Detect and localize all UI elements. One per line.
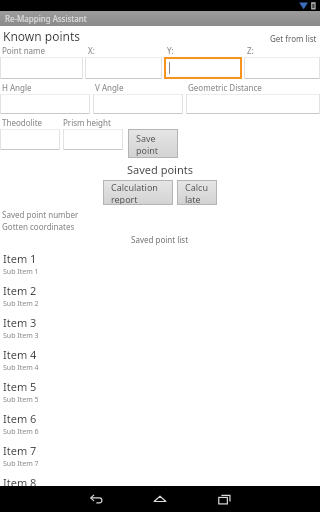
staticText: Item 1 <box>3 251 37 266</box>
staticText: Sub Item 5 <box>3 395 39 405</box>
staticText: Calculation report <box>111 181 165 205</box>
button[interactable] <box>0 94 90 114</box>
button[interactable]: Re-Mapping Assistant <box>0 11 320 26</box>
button[interactable]: Item 8 <box>0 473 320 486</box>
button[interactable] <box>63 129 123 150</box>
staticText: Prism height <box>63 117 126 128</box>
staticText: V Angle <box>95 82 185 93</box>
staticText: Saved point number <box>2 209 79 220</box>
staticText: Known points <box>3 28 81 44</box>
staticText: Geometric Distance <box>188 82 320 93</box>
staticText: Gotten coordinates <box>2 221 75 232</box>
button[interactable]: Item 1 <box>0 249 320 281</box>
button[interactable]: Item 2 <box>0 281 320 313</box>
button[interactable]: Back <box>83 486 109 512</box>
staticText: Sub Item 3 <box>3 331 39 341</box>
staticText: Re-Mapping Assistant <box>5 13 87 24</box>
button[interactable]: Recent apps <box>211 486 237 512</box>
staticText: Z: <box>247 45 320 56</box>
button[interactable]: Item 4 <box>0 345 320 377</box>
staticText: Saved point list <box>131 234 189 245</box>
staticText: H Angle <box>2 82 92 93</box>
staticText: Item 8 <box>3 475 37 486</box>
button[interactable] <box>85 57 162 79</box>
button[interactable]: Home <box>147 486 173 512</box>
staticText: Sub Item 2 <box>3 299 39 309</box>
staticText: Item 5 <box>3 379 37 394</box>
button[interactable]: Get from list <box>270 33 317 44</box>
staticText: X: <box>88 45 164 56</box>
staticText: Sub Item 4 <box>3 363 39 373</box>
button[interactable] <box>0 57 83 79</box>
staticText: Sub Item 1 <box>3 267 39 277</box>
button[interactable] <box>0 129 60 150</box>
button[interactable]: Item 5 <box>0 377 320 409</box>
button[interactable] <box>186 94 320 114</box>
button[interactable] <box>93 94 183 114</box>
staticText: Saved points <box>127 162 193 177</box>
button[interactable]: Calculation report <box>103 180 173 205</box>
staticText: Item 3 <box>3 315 37 330</box>
staticText: Get from list <box>270 33 317 44</box>
button[interactable]: Item 6 <box>0 409 320 441</box>
staticText: Sub Item 6 <box>3 427 39 437</box>
staticText: Item 2 <box>3 283 37 298</box>
staticText: Item 4 <box>3 347 37 362</box>
button[interactable] <box>244 57 320 79</box>
button[interactable]: Item 3 <box>0 313 320 345</box>
button[interactable]: Save point <box>128 129 178 158</box>
staticText: Point name <box>2 45 85 56</box>
staticText: Sub Item 7 <box>3 459 39 469</box>
staticText: Item 7 <box>3 443 37 458</box>
staticText: Y: <box>167 45 244 56</box>
staticText: Theodolite height <box>2 117 63 128</box>
staticText: Calculate <box>185 181 209 205</box>
staticText: Save point <box>136 132 170 156</box>
button[interactable] <box>164 57 242 79</box>
button[interactable]: Calculate <box>177 180 217 205</box>
staticText: Item 6 <box>3 411 37 426</box>
button[interactable]: Item 7 <box>0 441 320 473</box>
